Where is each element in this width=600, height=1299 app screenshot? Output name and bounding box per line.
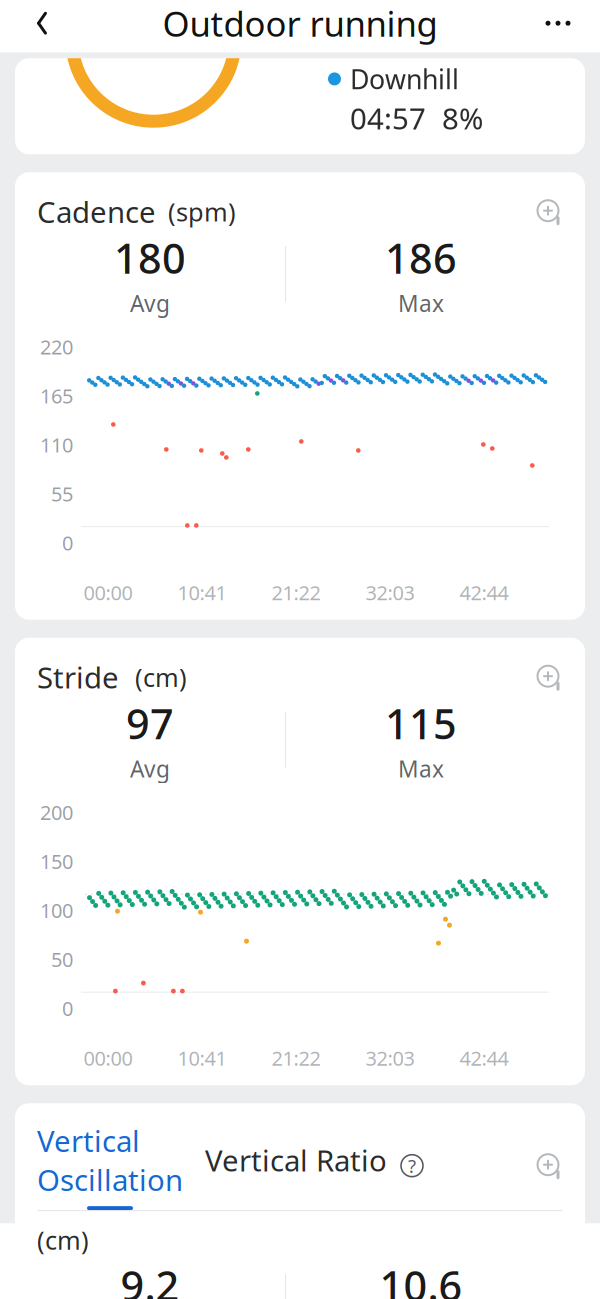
button[interactable]: Expand Cadence chart (535, 198, 563, 226)
staticText: (cm) (37, 1223, 89, 1257)
staticText: 32:03 (365, 1045, 414, 1071)
staticText: 10:41 (177, 579, 226, 606)
staticText: Avg (130, 754, 170, 784)
button[interactable]: Expand vertical oscillation chart (535, 1152, 563, 1180)
staticText: Outdoor running (162, 0, 437, 46)
staticText: 0 (62, 529, 73, 556)
staticText: 42:44 (459, 579, 508, 606)
staticText: 97 (126, 696, 174, 751)
staticText: Cadence (37, 192, 156, 231)
staticText: Vertical Ratio (205, 1141, 387, 1180)
staticText: 180 (114, 230, 186, 285)
staticText: 42:44 (459, 1045, 508, 1071)
button[interactable]: More options (536, 1, 580, 45)
button[interactable]: Vertical Ratio (183, 1141, 387, 1191)
staticText: Downhill (350, 61, 459, 97)
staticText: 55 (51, 480, 73, 507)
staticText: Max (398, 754, 444, 784)
staticText: Avg (130, 288, 170, 318)
staticText: 10.6 (379, 1258, 462, 1299)
staticText: 100 (40, 897, 73, 923)
staticText: 00:00 (83, 579, 132, 606)
staticText: 186 (385, 230, 457, 285)
staticText: 50 (51, 946, 73, 972)
button[interactable]: Expand Stride chart (535, 663, 563, 691)
staticText: (spm) (168, 195, 236, 228)
button[interactable]: About vertical metrics (387, 1153, 425, 1179)
staticText: 220 (40, 333, 73, 360)
staticText: Vertical Oscillation (37, 1121, 183, 1199)
staticText: 21:22 (271, 579, 320, 606)
staticText: 200 (40, 799, 73, 825)
staticText: 10:41 (177, 1045, 226, 1071)
staticText: 21:22 (271, 1045, 320, 1071)
staticText: (cm) (135, 660, 187, 694)
staticText: 00:00 (83, 1045, 132, 1071)
staticText: 32:03 (365, 579, 414, 606)
staticText: 04:57 (350, 99, 426, 138)
staticText: Max (398, 288, 444, 318)
button[interactable]: Back (20, 1, 64, 45)
button[interactable]: Vertical Oscillation (37, 1121, 183, 1210)
staticText: 9.2 (120, 1258, 179, 1299)
staticText: 110 (40, 431, 73, 458)
staticText: Stride (37, 658, 119, 697)
staticText: 115 (385, 696, 457, 751)
staticText: 150 (40, 848, 73, 874)
staticText: 165 (40, 382, 73, 409)
staticText: ? (408, 1153, 416, 1178)
staticText: 0 (62, 995, 73, 1021)
staticText: 8% (442, 99, 483, 138)
